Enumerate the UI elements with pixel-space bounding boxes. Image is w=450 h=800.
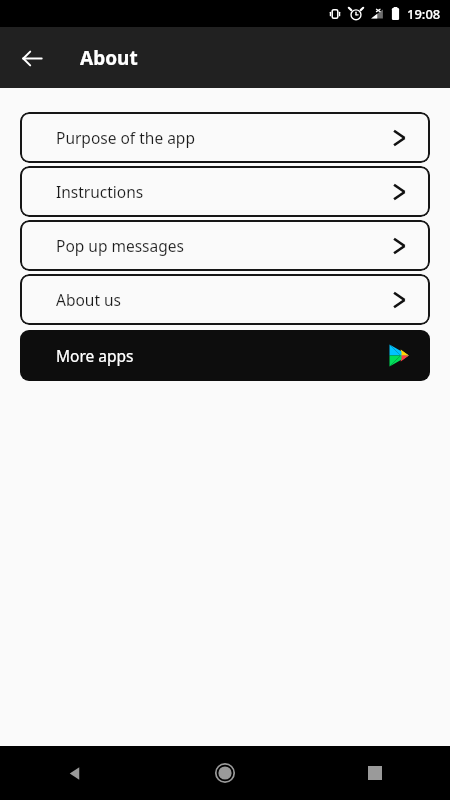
staticText: About: [80, 45, 138, 71]
staticText: Purpose of the app: [56, 127, 391, 148]
button[interactable]: Purpose of the app: [20, 112, 430, 163]
staticText: 19:08: [407, 5, 441, 23]
button[interactable]: Back: [0, 746, 150, 800]
button[interactable]: Recents: [300, 746, 450, 800]
staticText: More apps: [56, 345, 385, 366]
button[interactable]: Pop up messages: [20, 220, 430, 271]
button[interactable]: Back: [12, 38, 52, 78]
other: Google Play: [385, 343, 410, 368]
staticText: Pop up messages: [56, 235, 391, 256]
button[interactable]: Home: [150, 746, 300, 800]
staticText: Instructions: [56, 181, 391, 202]
button[interactable]: Instructions: [20, 166, 430, 217]
button[interactable]: More apps: [20, 330, 430, 381]
staticText: About us: [56, 289, 391, 310]
button[interactable]: About us: [20, 274, 430, 325]
